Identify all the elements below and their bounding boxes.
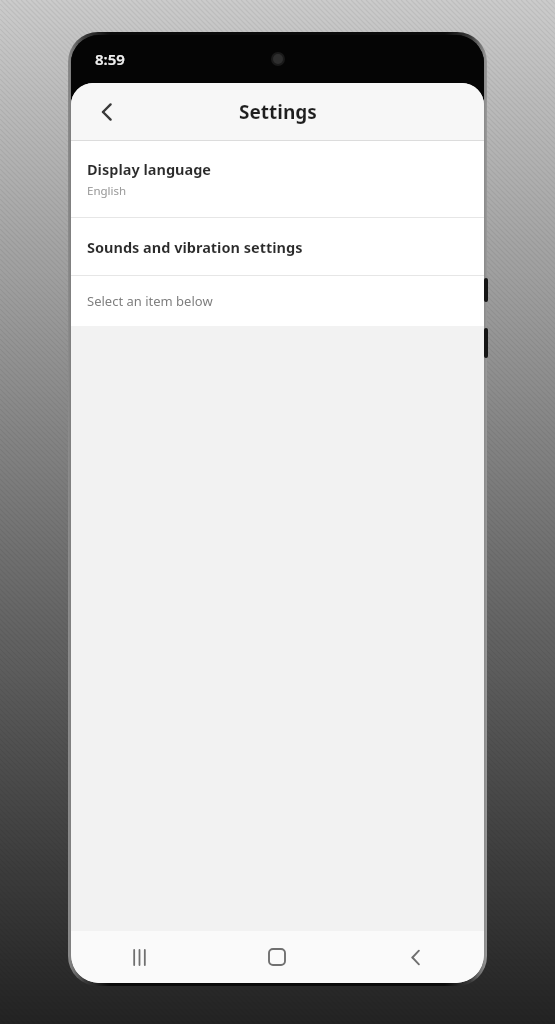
staticText: 8:59 [95,49,125,69]
button[interactable]: Sounds and vibration settings [71,218,484,275]
button[interactable]: Display language [71,141,484,217]
staticText: Display language [87,159,211,179]
button[interactable]: Back [346,931,484,983]
staticText: Settings [239,99,317,125]
staticText: English [87,183,127,199]
staticText: Select an item below [87,292,213,310]
button[interactable]: Select an item below [71,276,484,326]
button[interactable]: Recent apps [71,931,208,983]
staticText: Sounds and vibration settings [87,237,303,257]
button[interactable]: Home [208,931,346,983]
button[interactable]: Back [85,90,129,134]
